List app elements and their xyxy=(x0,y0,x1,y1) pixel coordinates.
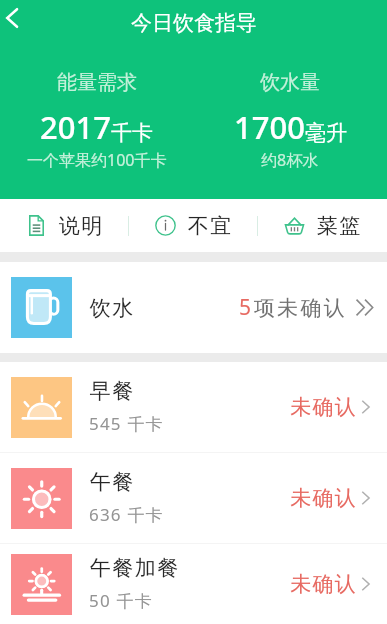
button[interactable]: 早餐 xyxy=(0,362,387,452)
staticText: 今日饮食指导 xyxy=(131,10,257,36)
staticText: 未确认 xyxy=(290,485,356,511)
staticText: 一个苹果约100千卡 xyxy=(27,149,167,171)
button[interactable]: 午餐 xyxy=(0,453,387,543)
button[interactable]: 午餐加餐 xyxy=(0,544,387,624)
staticText: 2017 xyxy=(40,106,111,148)
staticText: 未确认 xyxy=(290,571,356,597)
button[interactable]: 不宜 xyxy=(129,199,258,252)
staticText: 约8杯水 xyxy=(261,149,319,171)
staticText: 能量需求 xyxy=(57,70,137,95)
staticText: 未确认 xyxy=(290,394,356,420)
staticText: 636 千卡 xyxy=(89,503,164,526)
staticText: 项未确认 xyxy=(254,295,347,321)
staticText: 菜篮 xyxy=(316,213,361,239)
staticText: 不宜 xyxy=(187,213,232,239)
staticText: 早餐 xyxy=(89,378,134,404)
button[interactable]: 说明 xyxy=(0,199,129,252)
staticText: 50 千卡 xyxy=(89,589,153,612)
staticText: 午餐 xyxy=(89,469,134,495)
staticText: 说明 xyxy=(58,213,103,239)
button[interactable]: 菜篮 xyxy=(258,199,387,252)
staticText: 饮水 xyxy=(89,295,134,321)
staticText: 千卡 xyxy=(111,120,153,146)
button[interactable]: 饮水 xyxy=(0,262,387,353)
staticText: 5 xyxy=(239,293,254,322)
staticText: 毫升 xyxy=(305,120,347,146)
staticText: 1700 xyxy=(234,106,305,148)
button[interactable]: Back xyxy=(0,0,40,40)
staticText: 饮水量 xyxy=(260,70,320,95)
staticText: 午餐加餐 xyxy=(89,555,179,581)
staticText: 545 千卡 xyxy=(89,412,164,435)
